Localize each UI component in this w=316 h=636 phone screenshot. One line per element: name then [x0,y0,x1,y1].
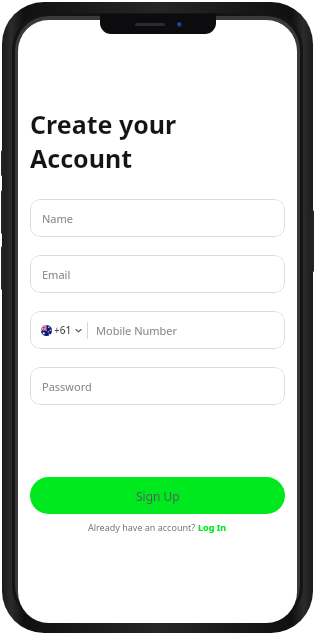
staticText: Sign Up [136,488,180,504]
button[interactable]: Mobile Number [96,311,285,349]
staticText: Mobile Number [96,323,178,338]
staticText: Name [42,211,74,226]
staticText: Email [42,267,71,282]
staticText: Log In [198,521,227,533]
button[interactable]: Sign Up [30,477,285,514]
button[interactable]: Already have an account? [18,521,297,533]
staticText: +61 [54,323,72,337]
button[interactable]: Name [30,199,285,237]
button[interactable]: Email [30,255,285,293]
staticText: Account [30,141,133,175]
staticText: Password [42,379,92,394]
staticText: Already have an account? [88,521,196,533]
staticText: Create your [30,107,177,141]
other: Australia [41,325,52,336]
button[interactable]: Password [30,367,285,405]
button[interactable]: Select country calling code [41,323,82,337]
